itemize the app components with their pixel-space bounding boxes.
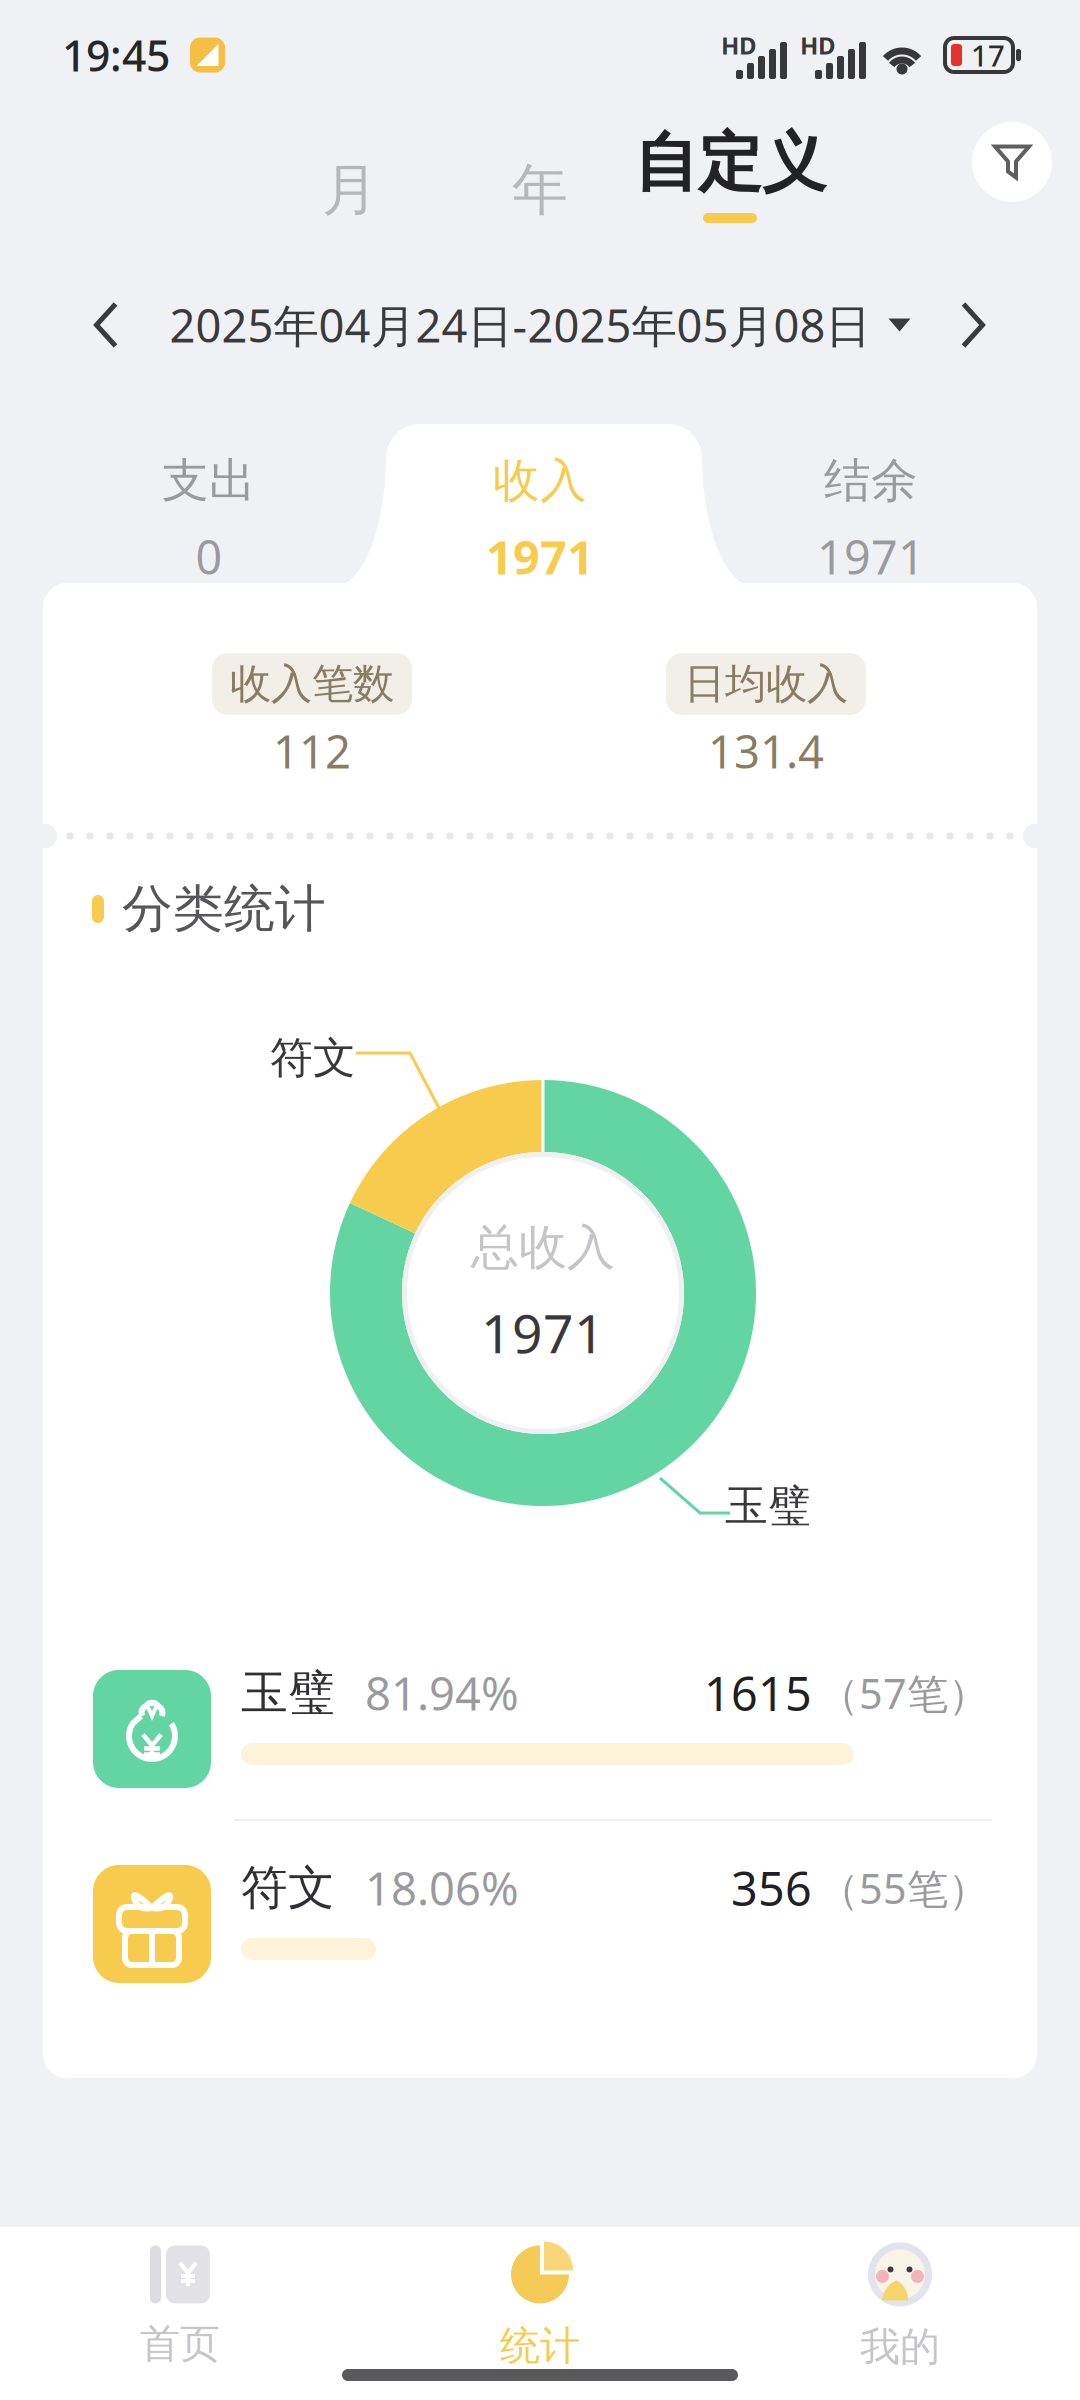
staticText: 统计 — [500, 2321, 580, 2370]
staticText: HD — [721, 29, 757, 61]
staticText: 18.06% — [365, 1858, 519, 1918]
staticText: 支出 — [162, 452, 256, 509]
staticText: 日均收入 — [684, 659, 848, 709]
staticText: 月 — [322, 156, 378, 224]
staticText: 结余 — [824, 452, 918, 509]
staticText: 1971 — [486, 525, 594, 587]
staticText: 收入 — [493, 452, 587, 509]
staticText: 81.94% — [365, 1663, 519, 1723]
button[interactable]: 收入 — [374, 398, 705, 610]
staticText: 首页 — [140, 2319, 220, 2368]
staticText: 玉璧 — [241, 1664, 335, 1722]
button[interactable]: 统计 — [360, 2242, 720, 2372]
button[interactable]: Next period — [918, 275, 1028, 375]
button[interactable]: 月 — [255, 125, 445, 255]
staticText: 玉璧 — [725, 1480, 811, 1532]
staticText: HD — [800, 29, 836, 61]
staticText: 1971 — [481, 1297, 605, 1368]
staticText: 2025年04月24日-2025年05月08日 — [169, 295, 870, 355]
staticText: 总收入 — [471, 1218, 615, 1277]
button[interactable]: 玉璧 — [93, 1670, 989, 1788]
staticText: 分类统计 — [122, 878, 326, 940]
button[interactable]: 结余 — [705, 398, 1036, 610]
button[interactable]: 支出 — [43, 398, 374, 610]
button[interactable]: 年 — [445, 125, 635, 255]
staticText: 符文 — [270, 1032, 356, 1084]
staticText: 17 — [971, 35, 1005, 74]
staticText: 我的 — [860, 2322, 940, 2371]
button[interactable]: 自定义 — [635, 125, 825, 255]
staticText: 356 — [731, 1857, 812, 1919]
button[interactable]: Filter — [972, 122, 1052, 202]
button[interactable]: Previous period — [51, 275, 161, 375]
staticText: （57笔） — [818, 1666, 989, 1720]
staticText: 年 — [512, 156, 568, 224]
staticText: 1971 — [817, 525, 925, 587]
button[interactable]: 符文 — [93, 1865, 989, 1983]
button[interactable]: 首页 — [0, 2242, 360, 2372]
staticText: 1615 — [704, 1662, 812, 1724]
staticText: 131.4 — [708, 721, 824, 781]
staticText: 0 — [195, 525, 222, 587]
staticText: 符文 — [241, 1859, 335, 1917]
button[interactable]: 我的 — [720, 2242, 1080, 2372]
button[interactable]: 2025年04月24日-2025年05月08日 — [169, 275, 910, 375]
staticText: 收入笔数 — [230, 659, 394, 709]
staticText: 自定义 — [634, 124, 826, 202]
staticText: 19:45 — [62, 27, 170, 83]
staticText: （55笔） — [818, 1861, 989, 1915]
staticText: 112 — [273, 721, 351, 781]
